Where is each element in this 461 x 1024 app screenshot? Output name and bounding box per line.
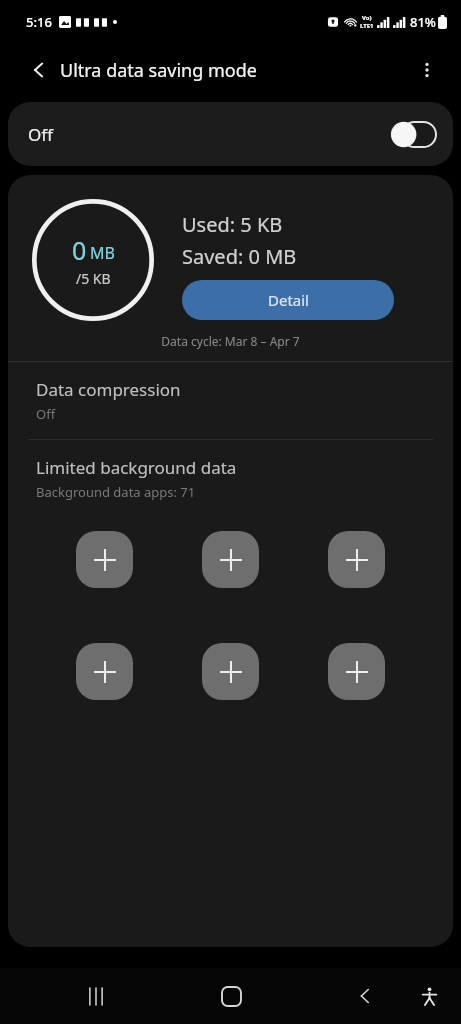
button[interactable]: Back [18, 49, 60, 91]
button[interactable]: Data compression [8, 362, 453, 439]
button[interactable]: Add app [76, 643, 133, 700]
staticText: Saved: 0 MB [182, 243, 297, 270]
staticText: 5:16 [26, 13, 52, 31]
button[interactable]: Home [207, 972, 255, 1020]
button[interactable]: Detail [182, 280, 394, 320]
staticText: 81% [410, 13, 436, 31]
staticText: Used: 5 KB [182, 211, 283, 238]
staticText: LTE1 [360, 22, 374, 30]
staticText: MB [90, 242, 115, 264]
button[interactable]: Add app [202, 643, 259, 700]
button[interactable]: Recent apps [72, 972, 120, 1020]
button[interactable]: Off [8, 102, 453, 166]
button[interactable]: Back [341, 972, 389, 1020]
staticText: Ultra data saving mode [60, 58, 257, 83]
staticText: Off [28, 123, 53, 146]
button[interactable]: Add app [328, 643, 385, 700]
staticText: Background data apps: 71 [36, 483, 196, 501]
button[interactable]: Accessibility [407, 974, 451, 1018]
staticText: Limited background data [36, 456, 237, 479]
button[interactable]: Add app [202, 531, 259, 588]
staticText: Vo) [362, 14, 372, 22]
staticText: Off [36, 405, 56, 423]
staticText: Data compression [36, 378, 181, 401]
staticText: /5 KB [76, 269, 111, 288]
staticText: 0 [72, 233, 87, 267]
button[interactable]: Add app [328, 531, 385, 588]
button[interactable]: Ultra data saving toggle [390, 122, 436, 147]
button[interactable]: More options [405, 48, 449, 92]
button[interactable]: Add app [76, 531, 133, 588]
staticText: Data cycle: Mar 8 – Apr 7 [8, 333, 453, 349]
staticText: Detail [268, 290, 309, 310]
button[interactable]: Limited background data [8, 440, 453, 517]
